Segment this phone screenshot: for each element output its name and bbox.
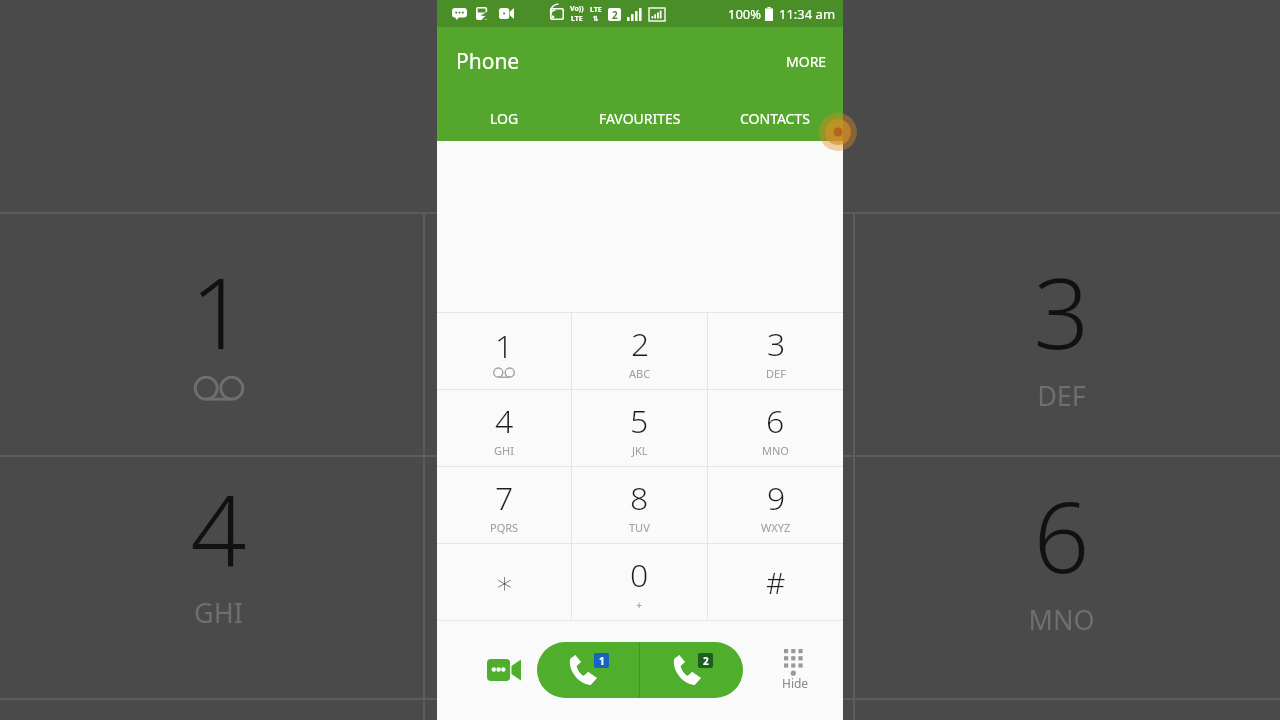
staticText: ABC [629,366,651,381]
staticText: 2 [631,322,650,366]
button[interactable]: CONTACTS [707,95,843,141]
staticText: LOG [490,109,519,128]
button[interactable]: Video call [477,649,531,691]
staticText: CONTACTS [740,109,810,128]
staticText: 6 [843,468,1280,601]
button[interactable]: ∗ [437,544,571,620]
button[interactable]: 8 [572,467,707,543]
staticText: 1 [0,244,437,377]
staticText: GHI [0,594,437,631]
staticText: 100% [728,5,762,23]
button[interactable]: 1 [437,313,571,389]
button[interactable]: FAVOURITES [572,95,707,141]
staticText: 8 [630,476,649,520]
staticText: 7 [495,476,514,520]
button[interactable]: MORE [770,42,843,81]
button[interactable]: 6 [708,390,843,466]
button[interactable]: Hide keypad [776,643,815,697]
button[interactable]: 7 [437,467,571,543]
staticText: 6 [766,399,785,443]
staticText: MNO [762,443,789,458]
staticText: + [636,597,643,612]
button[interactable]: 4 [437,390,571,466]
staticText: ∗ [495,565,514,600]
staticText: 4 [495,399,514,443]
staticText: 1 [599,654,605,668]
staticText: PQRS [490,520,519,535]
staticText: DEF [843,377,1280,414]
staticText: ⇅ [593,15,599,23]
staticText: 0 [630,553,649,597]
button[interactable]: Call with SIM 2 [640,642,743,698]
button[interactable]: 0 [572,544,707,620]
staticText: 3 [843,244,1280,377]
button[interactable]: 2 [572,313,707,389]
staticText: WXYZ [761,520,791,535]
staticText: 4 [0,461,437,594]
staticText: 5 [630,399,649,443]
staticText: 9 [767,476,786,520]
button[interactable]: # [708,544,843,620]
staticText: JKL [632,443,648,458]
button[interactable]: 9 [708,467,843,543]
staticText: FAVOURITES [599,109,681,128]
staticText: 3 [767,322,786,366]
button[interactable]: LOG [437,95,572,141]
staticText: GHI [494,443,514,458]
staticText: 1 [495,324,514,368]
staticText: TUV [629,520,650,535]
staticText: Hide [782,675,809,691]
staticText: Phone [456,47,520,76]
staticText: Vo)) [570,4,584,14]
button[interactable]: 3 [708,313,843,389]
staticText: 2 [703,654,709,668]
staticText: LTE [571,14,583,24]
staticText: # [766,562,786,603]
staticText: 2 [612,8,618,21]
staticText: LTE [590,5,602,15]
staticText: MNO [843,601,1280,638]
button[interactable]: Call with SIM 1 [537,642,639,698]
staticText: MORE [786,52,827,71]
staticText: DEF [766,366,786,381]
button[interactable]: 5 [572,390,707,466]
staticText: 11:34 am [779,5,836,23]
